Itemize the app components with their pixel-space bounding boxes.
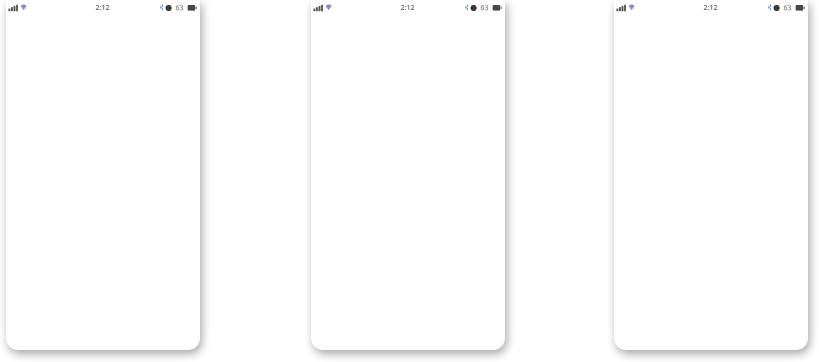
staticText: 2:12	[95, 3, 109, 12]
staticText: 2:12	[400, 3, 414, 12]
staticText: 63	[480, 3, 488, 12]
staticText: 63	[783, 3, 791, 12]
staticText: 2:12	[703, 3, 717, 12]
staticText: 63	[175, 3, 183, 12]
